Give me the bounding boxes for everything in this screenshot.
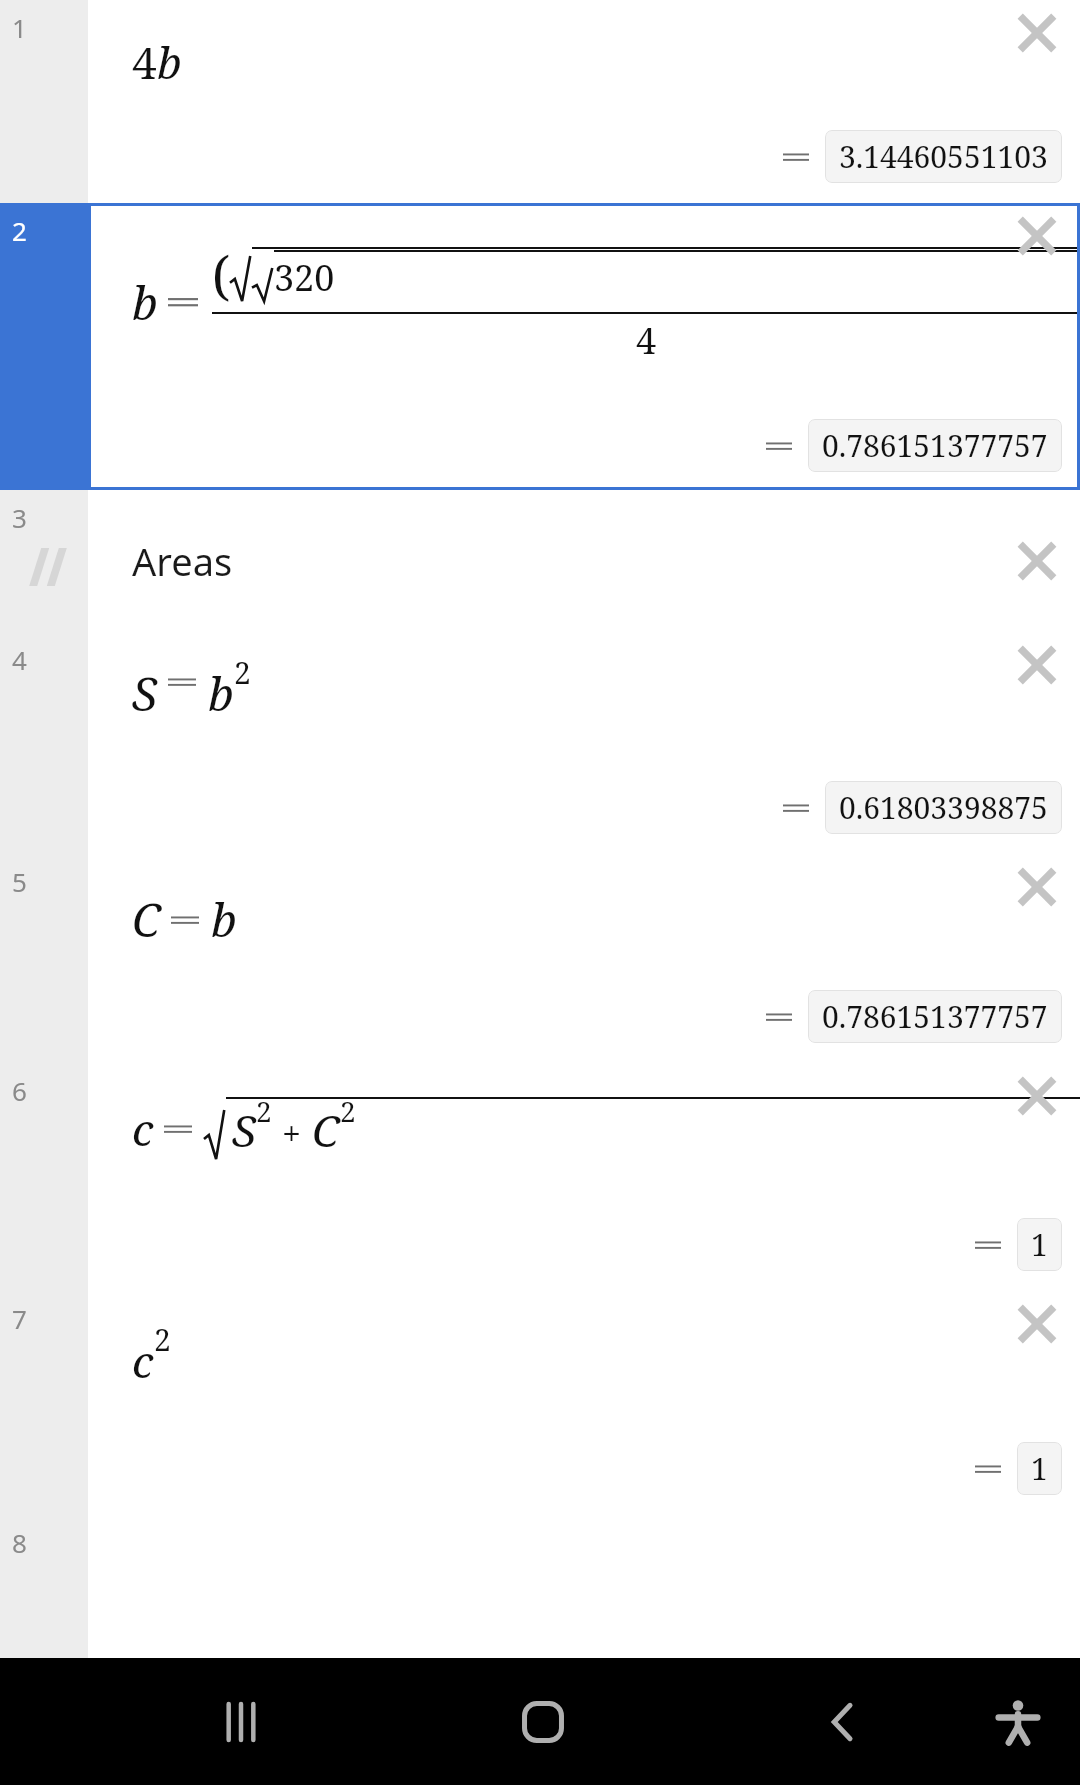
staticText: 2 [256,1092,272,1130]
button[interactable]: 7 [0,1291,88,1515]
button[interactable]: S [88,632,1080,854]
button[interactable]: Delete expression [1006,2,1068,64]
button[interactable]: Accessibility [975,1658,1061,1785]
button[interactable]: 1 [1017,1442,1062,1495]
button[interactable]: Recent apps [198,1658,284,1785]
staticText: 6 [12,1073,27,1108]
staticText: b [211,888,237,951]
button[interactable]: 5 [0,854,88,1063]
staticText: + [282,1110,302,1156]
staticText: 2 [234,652,251,693]
staticText: b [208,662,234,725]
button[interactable]: 1 [1017,1218,1062,1271]
staticText: 0.61803398875 [839,787,1048,828]
button[interactable]: b [88,203,1080,490]
button[interactable]: c [88,1063,1080,1291]
button[interactable]: 0.61803398875 [825,781,1062,834]
button[interactable]: Delete expression [1006,205,1068,267]
staticText: c [132,1099,154,1159]
button[interactable]: 4 [88,0,1080,203]
button[interactable]: Delete expression [1006,530,1068,592]
staticText: 1 [1031,1224,1048,1265]
staticText: S [232,1100,256,1160]
staticText: 2 [340,1092,356,1130]
staticText: 320 [274,253,335,302]
staticText: b [132,271,158,334]
staticText: 3.14460551103 [839,136,1048,177]
staticText: ( [212,239,230,310]
button[interactable]: Delete expression [1006,1065,1068,1127]
staticText: 4 [12,642,27,677]
staticText: C [312,1100,340,1160]
button[interactable]: 6 [0,1063,88,1291]
staticText: 1 [1031,1448,1048,1489]
button[interactable]: 8 [0,1515,88,1658]
button[interactable]: c [88,1291,1080,1515]
button[interactable]: 1 [0,0,88,203]
staticText: 8 [12,1525,27,1560]
button[interactable]: Delete expression [1006,856,1068,918]
staticText: 7 [12,1301,27,1336]
staticText: 4 [132,32,157,92]
button[interactable]: 4 [0,632,88,854]
staticText: 0.786151377757 [822,425,1048,466]
button[interactable]: Home [500,1658,586,1785]
staticText: 4 [636,316,657,365]
button[interactable]: C [88,854,1080,1063]
button[interactable]: 0.786151377757 [808,419,1062,472]
staticText: 3 [12,500,27,535]
staticText: 5 [12,864,27,899]
button[interactable]: 3 [0,490,88,632]
staticText: S [132,662,158,725]
staticText: Areas [132,535,233,587]
staticText: c [132,1331,154,1391]
staticText: 2 [12,213,27,248]
staticText: b [157,32,182,92]
button[interactable]: Delete expression [1006,634,1068,696]
button[interactable]: Areas [88,490,1080,632]
button[interactable]: 0.786151377757 [808,990,1062,1043]
button[interactable]: Delete expression [1006,1293,1068,1355]
staticText: C [132,888,161,951]
staticText: 1 [12,10,27,45]
button[interactable]: 3.14460551103 [825,130,1062,183]
staticText: 2 [154,1319,171,1360]
button[interactable]: 2 [0,203,88,490]
button[interactable]: Back [800,1658,886,1785]
staticText: 0.786151377757 [822,996,1048,1037]
